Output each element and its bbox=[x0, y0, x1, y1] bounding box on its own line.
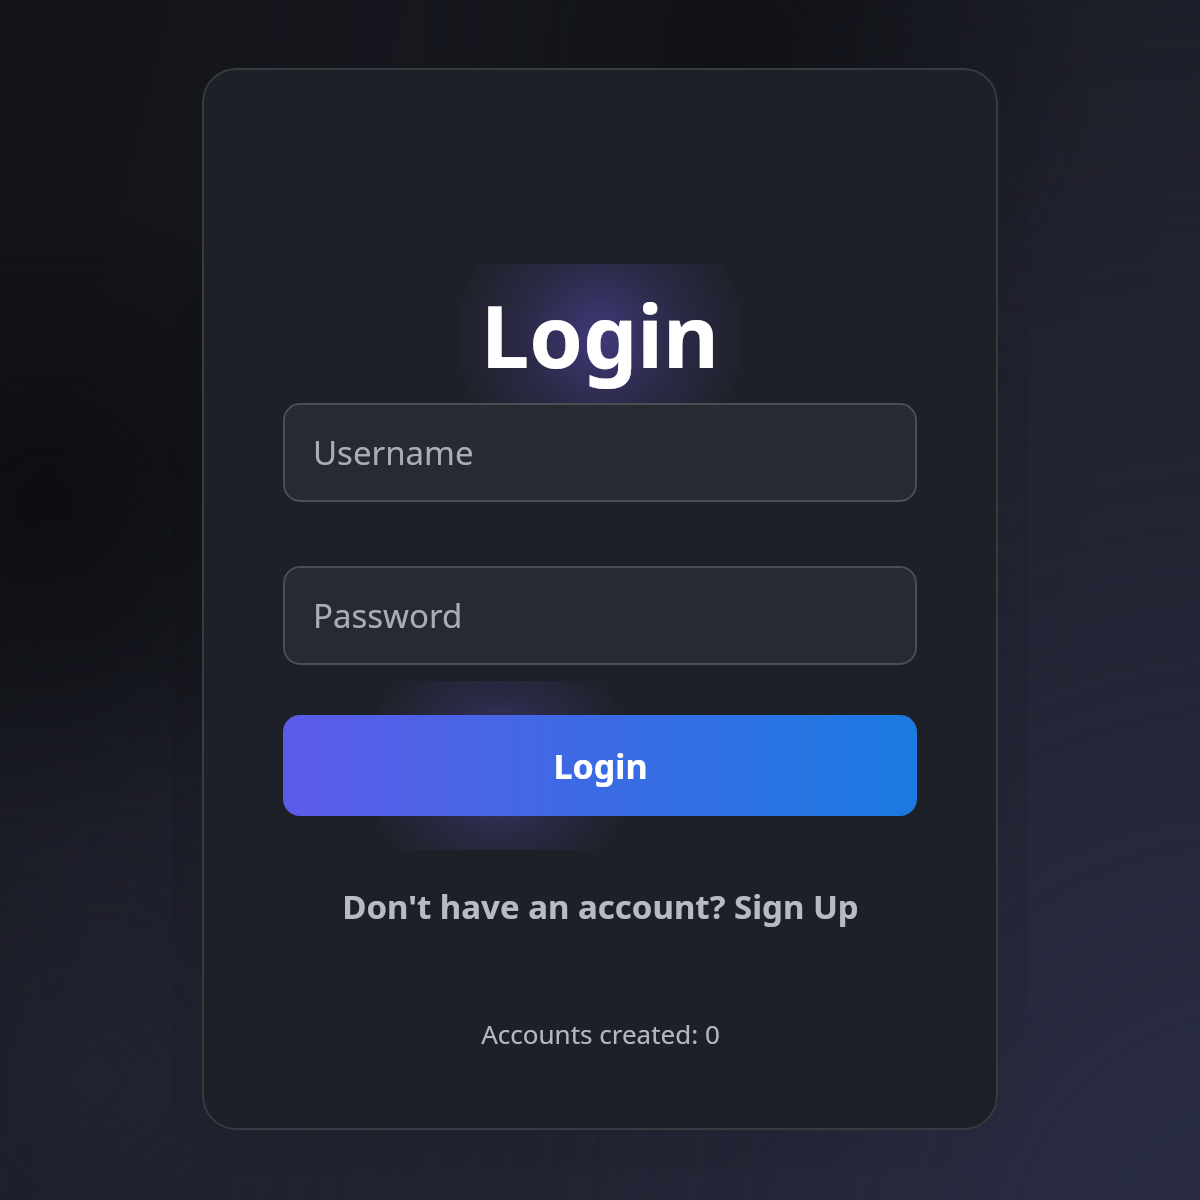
button[interactable]: Username bbox=[283, 403, 917, 502]
staticText: Password bbox=[313, 593, 463, 638]
button[interactable]: Don't have an account? Sign Up bbox=[202, 871, 998, 941]
staticText: Login bbox=[553, 743, 648, 789]
button[interactable]: Password bbox=[283, 566, 917, 665]
button[interactable]: Login bbox=[283, 715, 917, 816]
staticText: Login bbox=[481, 276, 719, 393]
staticText: Accounts created: 0 bbox=[481, 1016, 720, 1051]
staticText: Don't have an account? Sign Up bbox=[342, 884, 859, 929]
staticText: Username bbox=[313, 430, 474, 475]
